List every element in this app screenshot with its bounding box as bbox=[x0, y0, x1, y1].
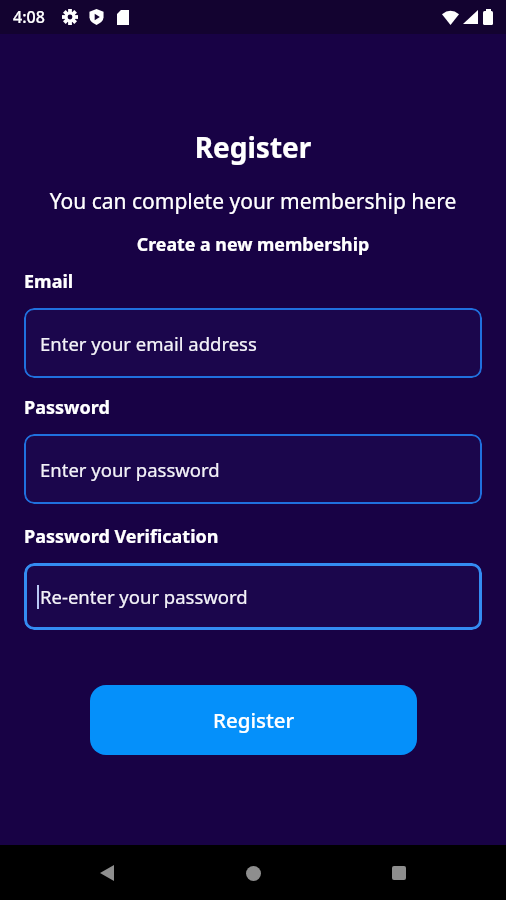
staticText: Password Verification bbox=[24, 524, 219, 549]
staticText: Register bbox=[213, 706, 295, 734]
button[interactable] bbox=[392, 866, 406, 880]
staticText: Re-enter your password bbox=[40, 584, 248, 609]
button[interactable]: Register bbox=[90, 685, 417, 755]
button[interactable] bbox=[246, 866, 261, 881]
staticText: Create a new membership bbox=[0, 232, 506, 256]
button[interactable]: Re-enter your password bbox=[24, 563, 482, 630]
staticText: Register bbox=[0, 128, 506, 166]
button[interactable]: Enter your password bbox=[24, 434, 482, 504]
staticText: Email bbox=[24, 269, 74, 294]
button[interactable]: Enter your email address bbox=[24, 308, 482, 378]
staticText: 4:08 bbox=[13, 6, 45, 28]
staticText: Password bbox=[24, 395, 110, 420]
staticText: Enter your email address bbox=[40, 331, 257, 356]
button[interactable] bbox=[100, 865, 114, 881]
staticText: You can complete your membership here bbox=[0, 187, 506, 216]
staticText: Enter your password bbox=[40, 457, 220, 482]
